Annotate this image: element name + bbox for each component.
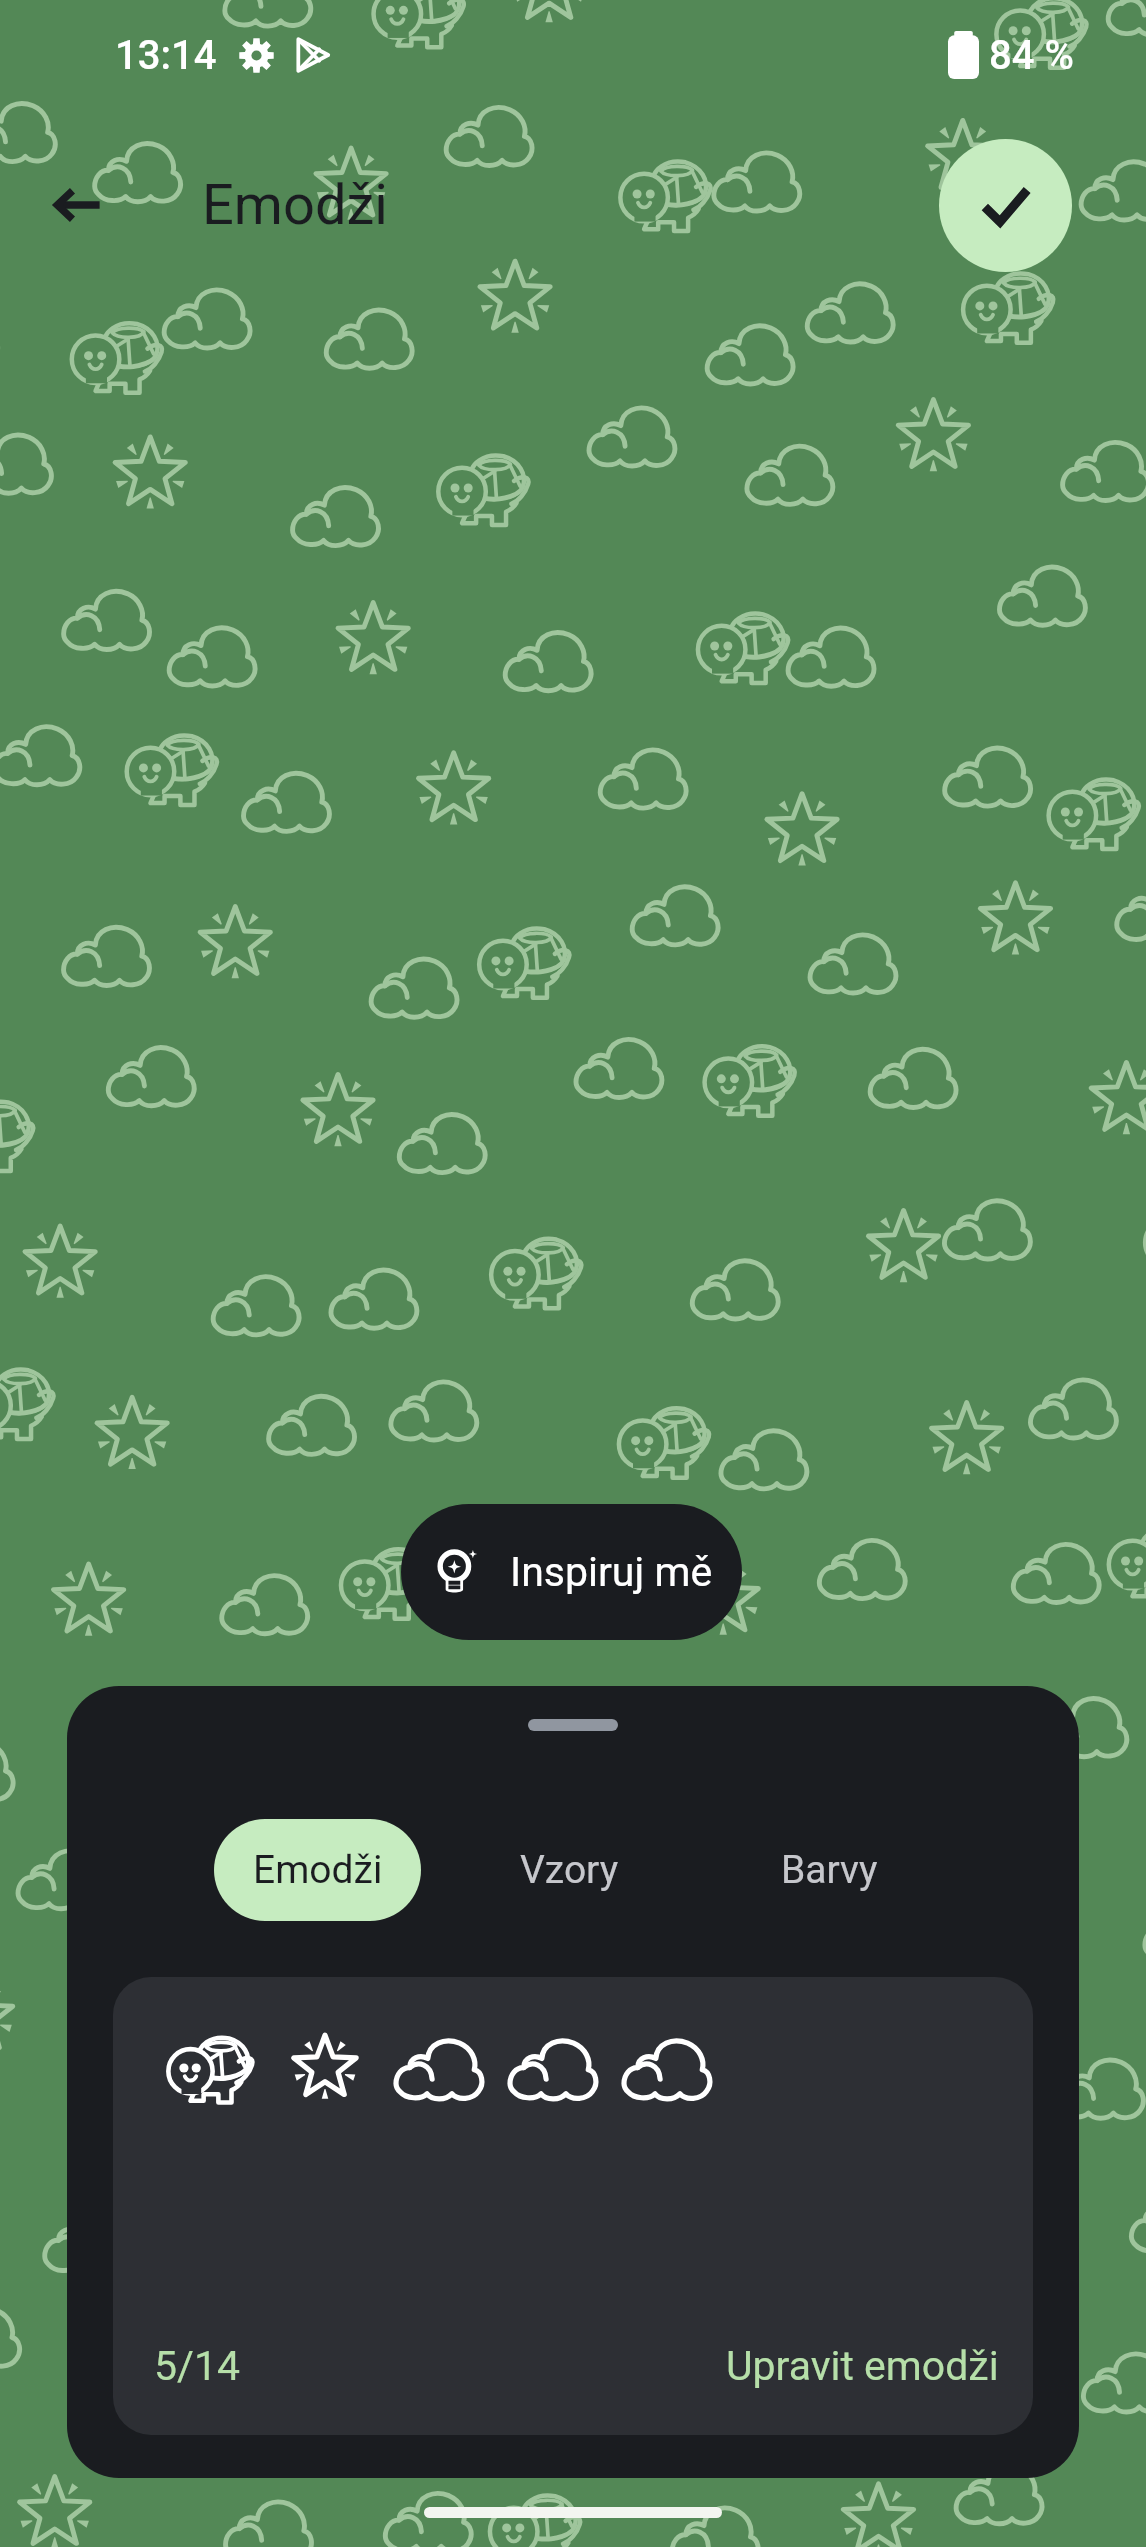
button[interactable]: 5/14 xyxy=(154,2335,241,2397)
staticText: Barvy xyxy=(781,1847,878,1893)
button[interactable]: Vzory xyxy=(477,1819,662,1921)
staticText: Inspiruj mě xyxy=(510,1548,713,1596)
button[interactable]: Barvy xyxy=(737,1819,922,1921)
button[interactable]: Done xyxy=(939,139,1072,272)
staticText: 5/14 xyxy=(154,2342,241,2390)
button[interactable]: Upravit emodži xyxy=(726,2335,999,2397)
staticText: Emodži xyxy=(253,1847,383,1893)
button[interactable]: Inspiruj mě xyxy=(401,1504,742,1640)
button[interactable]: Emodži xyxy=(214,1819,421,1921)
staticText: Emodži xyxy=(202,172,388,238)
staticText: 13:14 xyxy=(115,32,217,79)
staticText: 84 % xyxy=(989,32,1074,79)
staticText: Vzory xyxy=(520,1847,619,1893)
button[interactable]: Back xyxy=(30,157,126,253)
staticText: Upravit emodži xyxy=(726,2342,999,2390)
